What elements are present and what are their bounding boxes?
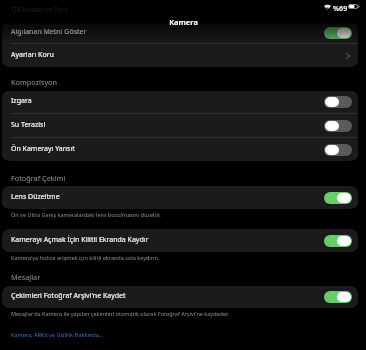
staticText: Kamera, ARKit ve Gizlilik Hakkında... [11, 331, 104, 338]
staticText: Izgara [11, 96, 32, 106]
staticText: Ön ve Ultra Geniş kameralardaki lens boz… [11, 211, 161, 218]
button[interactable]: Açık [324, 235, 352, 247]
staticText: Mesajlar'da Kamera ile yapılan çekimleri… [11, 310, 229, 317]
other: Wi-Fi [324, 5, 331, 10]
button[interactable]: Izgara [2, 91, 358, 113]
staticText: Kompozisyon [11, 77, 58, 87]
button[interactable]: Kamerayı Açmak İçin Kilitli Ekranda Kayd… [2, 229, 358, 252]
button[interactable]: Kapalı [324, 96, 352, 108]
staticText: Fotoğraf Çekimi [11, 173, 66, 183]
staticText: Mesajlar [11, 272, 41, 282]
button[interactable]: Açık [324, 27, 352, 39]
button[interactable]: Kapalı [324, 120, 352, 132]
staticText: Kamerayı Açmak İçin Kilitli Ekranda Kayd… [11, 235, 149, 245]
staticText: Çekimleri Fotoğraf Arşivi'ne Kaydet [11, 291, 126, 301]
staticText: Ön Kamerayı Yansıt [11, 144, 75, 154]
other: Aç [346, 53, 350, 59]
button[interactable]: Kamera, ARKit ve Gizlilik Hakkında... [11, 331, 104, 338]
staticText: Su Terazisi [11, 120, 46, 130]
button[interactable]: Kapalı [324, 144, 352, 156]
staticText: Algılanan Metni Göster [11, 27, 87, 37]
button[interactable]: Ön Kamerayı Yansıt [2, 138, 358, 161]
button[interactable]: Lens Düzeltme [2, 186, 358, 209]
staticText: Ayarları Koru [11, 50, 54, 60]
button[interactable]: Ayarları Koru [2, 44, 358, 67]
staticText: %69 [333, 4, 348, 14]
button[interactable]: Açık [324, 192, 352, 204]
button[interactable]: Açık [324, 291, 352, 303]
other: Pil %69 [348, 4, 360, 9]
button[interactable]: Algılanan Metni Göster [2, 22, 358, 43]
staticText: Lens Düzeltme [11, 192, 60, 202]
staticText: Kamera'ya hızlıca erişmek için kilitli e… [11, 254, 160, 261]
staticText: QR Kodlarını Tara [11, 5, 68, 15]
button[interactable]: Su Terazisi [2, 114, 358, 137]
button[interactable]: Çekimleri Fotoğraf Arşivi'ne Kaydet [2, 286, 358, 308]
staticText: Kamera [169, 17, 198, 27]
